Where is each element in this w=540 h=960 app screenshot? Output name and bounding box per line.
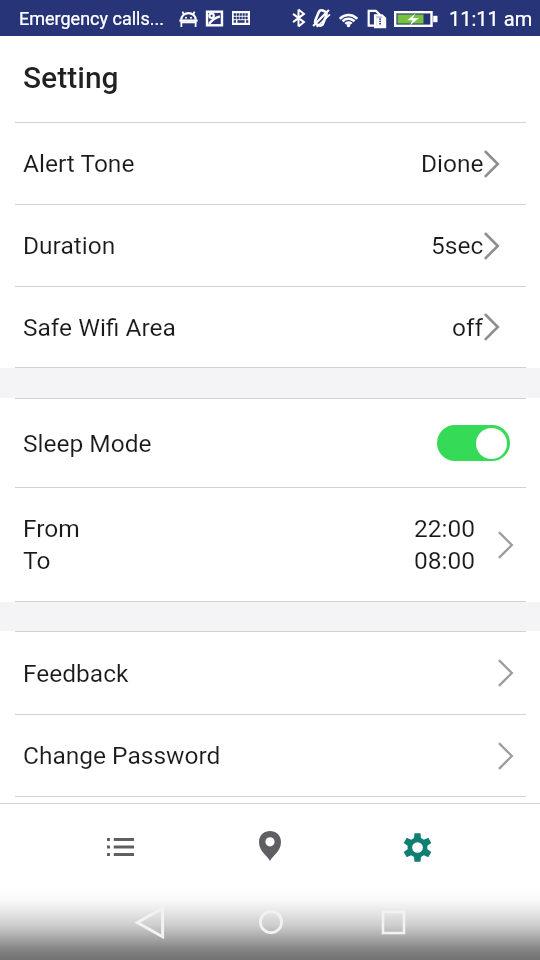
staticText: Emergency calls...: [19, 8, 164, 29]
staticText: Feedback: [23, 659, 129, 688]
button[interactable]: Recents: [365, 886, 419, 960]
staticText: Sleep Mode: [23, 429, 152, 458]
staticText: 11:11 am: [449, 7, 533, 30]
button[interactable]: List: [93, 804, 147, 886]
staticText: Alert Tone: [23, 149, 135, 178]
button[interactable]: Duration: [0, 205, 540, 286]
staticText: Duration: [23, 231, 116, 260]
staticText: 08:00: [414, 546, 476, 575]
staticText: Safe Wifi Area: [23, 313, 176, 342]
staticText: Change Password: [23, 741, 221, 770]
button[interactable]: Feedback: [0, 632, 540, 714]
staticText: 5sec: [431, 231, 484, 260]
button[interactable]: Home: [243, 886, 297, 960]
button[interactable]: Settings: [391, 804, 445, 886]
staticText: Dione: [421, 149, 484, 178]
button[interactable]: Sleep Mode: [0, 399, 540, 487]
button[interactable]: Back: [123, 886, 177, 960]
staticText: Setting: [23, 60, 119, 95]
button[interactable]: Map: [243, 804, 297, 886]
button[interactable]: Alert Tone: [0, 123, 540, 204]
staticText: From: [23, 514, 80, 543]
staticText: off: [452, 313, 484, 342]
button[interactable]: Change Password: [0, 715, 540, 796]
button[interactable]: Safe Wifi Area: [0, 287, 540, 367]
staticText: To: [23, 546, 51, 575]
staticText: 22:00: [414, 514, 476, 543]
button[interactable]: From: [0, 488, 540, 601]
